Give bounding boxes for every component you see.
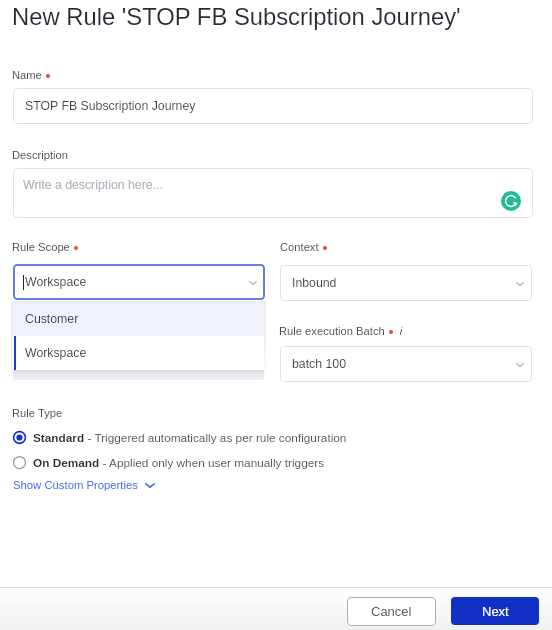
staticText: STOP FB Subscription Journey [25, 99, 196, 113]
staticText: Cancel [371, 604, 412, 619]
button[interactable]: Workspace [13, 336, 264, 370]
staticText: Rule execution Batch [279, 325, 385, 338]
staticText: Customer [25, 312, 79, 326]
button[interactable]: STOP FB Subscription Journey [13, 88, 533, 124]
button[interactable]: Show Custom Properties [13, 477, 155, 493]
staticText: Workspace [25, 346, 87, 360]
staticText: Rule Type [12, 407, 63, 420]
button[interactable]: Inbound [280, 265, 532, 301]
staticText: batch 100 [292, 357, 347, 371]
staticText: Context [280, 241, 319, 254]
staticText: Show Custom Properties [13, 479, 138, 492]
button[interactable]: Write a description here... [13, 168, 533, 218]
button[interactable]: batch 100 [280, 346, 532, 382]
button[interactable]: Workspace [13, 264, 265, 300]
staticText: Inbound [292, 276, 337, 290]
button[interactable]: Standard - Triggered automatically as pe… [11, 428, 347, 446]
staticText: On Demand - Applied only when user manua… [33, 456, 325, 469]
staticText: Workspace [25, 275, 87, 289]
staticText: Name [12, 69, 42, 82]
button[interactable]: Next [451, 597, 539, 625]
button[interactable]: On Demand - Applied only when user manua… [11, 453, 325, 471]
staticText: i [399, 325, 402, 338]
staticText: Next [482, 604, 509, 619]
button[interactable]: Generate description with AI [501, 191, 521, 211]
staticText: Description [12, 149, 68, 162]
staticText: Rule Scope [12, 241, 70, 254]
staticText: Write a description here... [23, 178, 163, 192]
button[interactable]: Customer [13, 302, 264, 336]
button[interactable]: Cancel [347, 597, 436, 626]
staticText: Standard - Triggered automatically as pe… [33, 431, 347, 444]
staticText: New Rule 'STOP FB Subscription Journey' [12, 3, 461, 30]
